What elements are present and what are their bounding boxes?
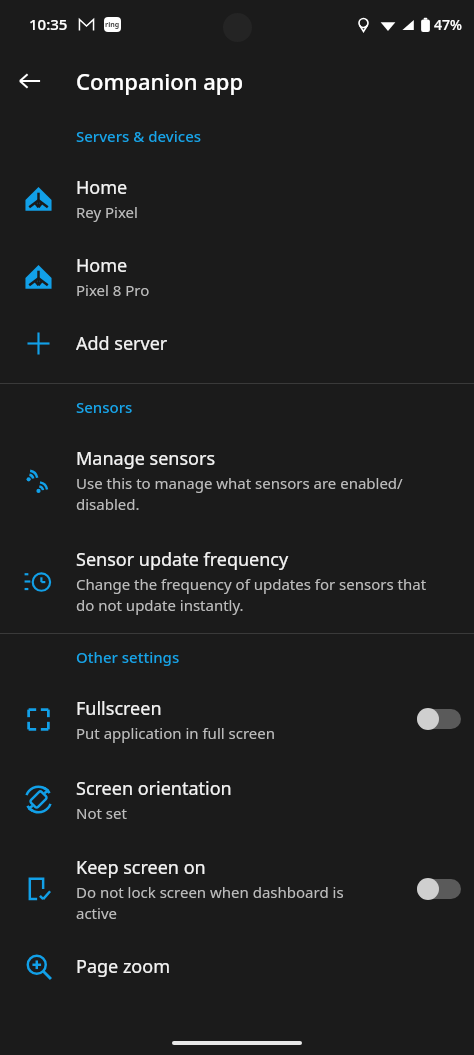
button[interactable]: Back (0, 48, 60, 113)
staticText: Fullscreen (76, 696, 162, 721)
staticText: Manage sensors (76, 446, 216, 471)
staticText: Sensors (76, 397, 133, 417)
button[interactable]: Fullscreen (0, 680, 474, 758)
staticText: Screen orientation (76, 776, 232, 801)
staticText: Companion app (76, 66, 244, 96)
staticText: Put application in full screen (76, 723, 275, 743)
staticText: Home (76, 253, 128, 278)
staticText: ring (105, 20, 120, 30)
staticText: Page zoom (76, 954, 170, 979)
staticText: Use this to manage what sensors are enab… (76, 473, 403, 515)
button[interactable]: Add server (0, 315, 474, 371)
staticText: Not set (76, 803, 127, 823)
button[interactable]: Sensor update frequency (0, 530, 474, 633)
button[interactable]: Home (0, 159, 474, 237)
staticText: Rey Pixel (76, 202, 138, 222)
button[interactable]: Manage sensors (0, 430, 474, 530)
staticText: Other settings (76, 647, 180, 667)
button[interactable]: Screen orientation (0, 758, 474, 840)
staticText: Add server (76, 331, 168, 356)
staticText: Sensor update frequency (76, 547, 289, 572)
staticText: 10:35 (29, 14, 68, 34)
button[interactable]: Page zoom (0, 938, 474, 994)
staticText: Change the frequency of updates for sens… (76, 574, 427, 616)
staticText: Do not lock screen when dashboard is act… (76, 882, 344, 924)
staticText: Keep screen on (76, 855, 206, 880)
button[interactable]: Fullscreen toggle (404, 680, 474, 758)
staticText: Home (76, 175, 128, 200)
staticText: Pixel 8 Pro (76, 280, 150, 300)
button[interactable]: Keep screen on toggle (404, 840, 474, 938)
button[interactable]: Keep screen on (0, 840, 474, 938)
button[interactable]: Home (0, 237, 474, 315)
staticText: Servers & devices (76, 126, 202, 146)
staticText: 47% (434, 15, 462, 34)
